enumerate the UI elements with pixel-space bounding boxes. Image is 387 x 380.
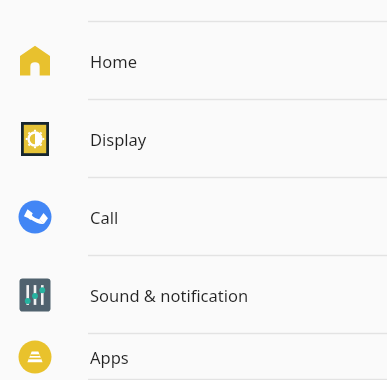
button[interactable]: Home [0,22,387,100]
button[interactable]: Sound & notification [0,256,387,334]
button[interactable]: Display [0,100,387,178]
button[interactable]: Call [0,178,387,256]
button[interactable]: Previous setting [0,0,387,22]
staticText: Call [90,206,119,228]
staticText: Display [90,128,147,150]
staticText: Apps [90,346,129,368]
button[interactable]: Apps [0,334,387,380]
staticText: Sound & notification [90,284,249,306]
staticText: Home [90,50,137,72]
